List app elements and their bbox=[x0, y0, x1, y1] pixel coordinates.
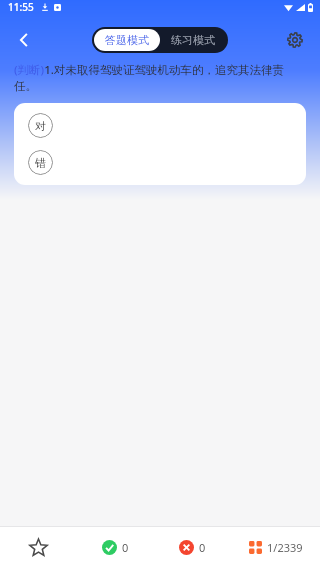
staticText: 0 bbox=[199, 540, 206, 555]
staticText: 0 bbox=[122, 540, 129, 555]
button[interactable]: 0 bbox=[77, 527, 154, 568]
staticText: 11:55 bbox=[8, 0, 34, 14]
staticText: (判断)1.对未取得驾驶证驾驶机动车的，追究其法律责任。 bbox=[14, 62, 306, 93]
button[interactable]: Back bbox=[4, 20, 44, 60]
staticText: 1/2339 bbox=[267, 540, 303, 555]
button[interactable]: 0 bbox=[154, 527, 231, 568]
button[interactable]: 答题模式 bbox=[94, 29, 160, 51]
staticText: 错 bbox=[35, 156, 46, 170]
staticText: 练习模式 bbox=[171, 33, 215, 47]
staticText: 答题模式 bbox=[105, 33, 149, 47]
button[interactable]: Settings bbox=[276, 21, 314, 59]
button[interactable]: 对 bbox=[28, 113, 53, 138]
button[interactable]: 1/2339 bbox=[231, 527, 320, 568]
button[interactable]: 练习模式 bbox=[160, 29, 226, 51]
button[interactable]: 错 bbox=[28, 150, 53, 175]
button[interactable]: Favorite bbox=[0, 527, 77, 568]
staticText: 对 bbox=[35, 119, 46, 133]
